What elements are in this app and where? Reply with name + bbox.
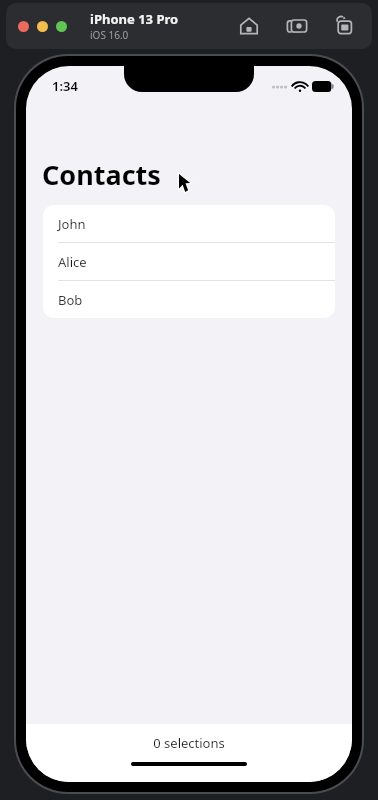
staticText: iOS 16.0	[90, 28, 129, 42]
button[interactable]: Screenshot	[284, 13, 310, 39]
button[interactable]: Bob	[43, 281, 335, 318]
button[interactable]: Rotate	[332, 13, 358, 39]
staticText: John	[58, 215, 86, 233]
button[interactable]: John	[43, 205, 335, 243]
staticText: iPhone 13 Pro	[90, 10, 179, 28]
staticText: Contacts	[42, 156, 161, 193]
staticText: 1:34	[52, 77, 78, 95]
button[interactable]: Home	[236, 13, 262, 39]
button[interactable]: Zoom	[56, 21, 67, 32]
staticText: Bob	[58, 291, 83, 309]
staticText: Alice	[58, 253, 87, 271]
button[interactable]: Close	[18, 21, 29, 32]
button[interactable]: Minimize	[37, 21, 48, 32]
button[interactable]: Alice	[43, 243, 335, 281]
staticText: 0 selections	[153, 734, 225, 752]
